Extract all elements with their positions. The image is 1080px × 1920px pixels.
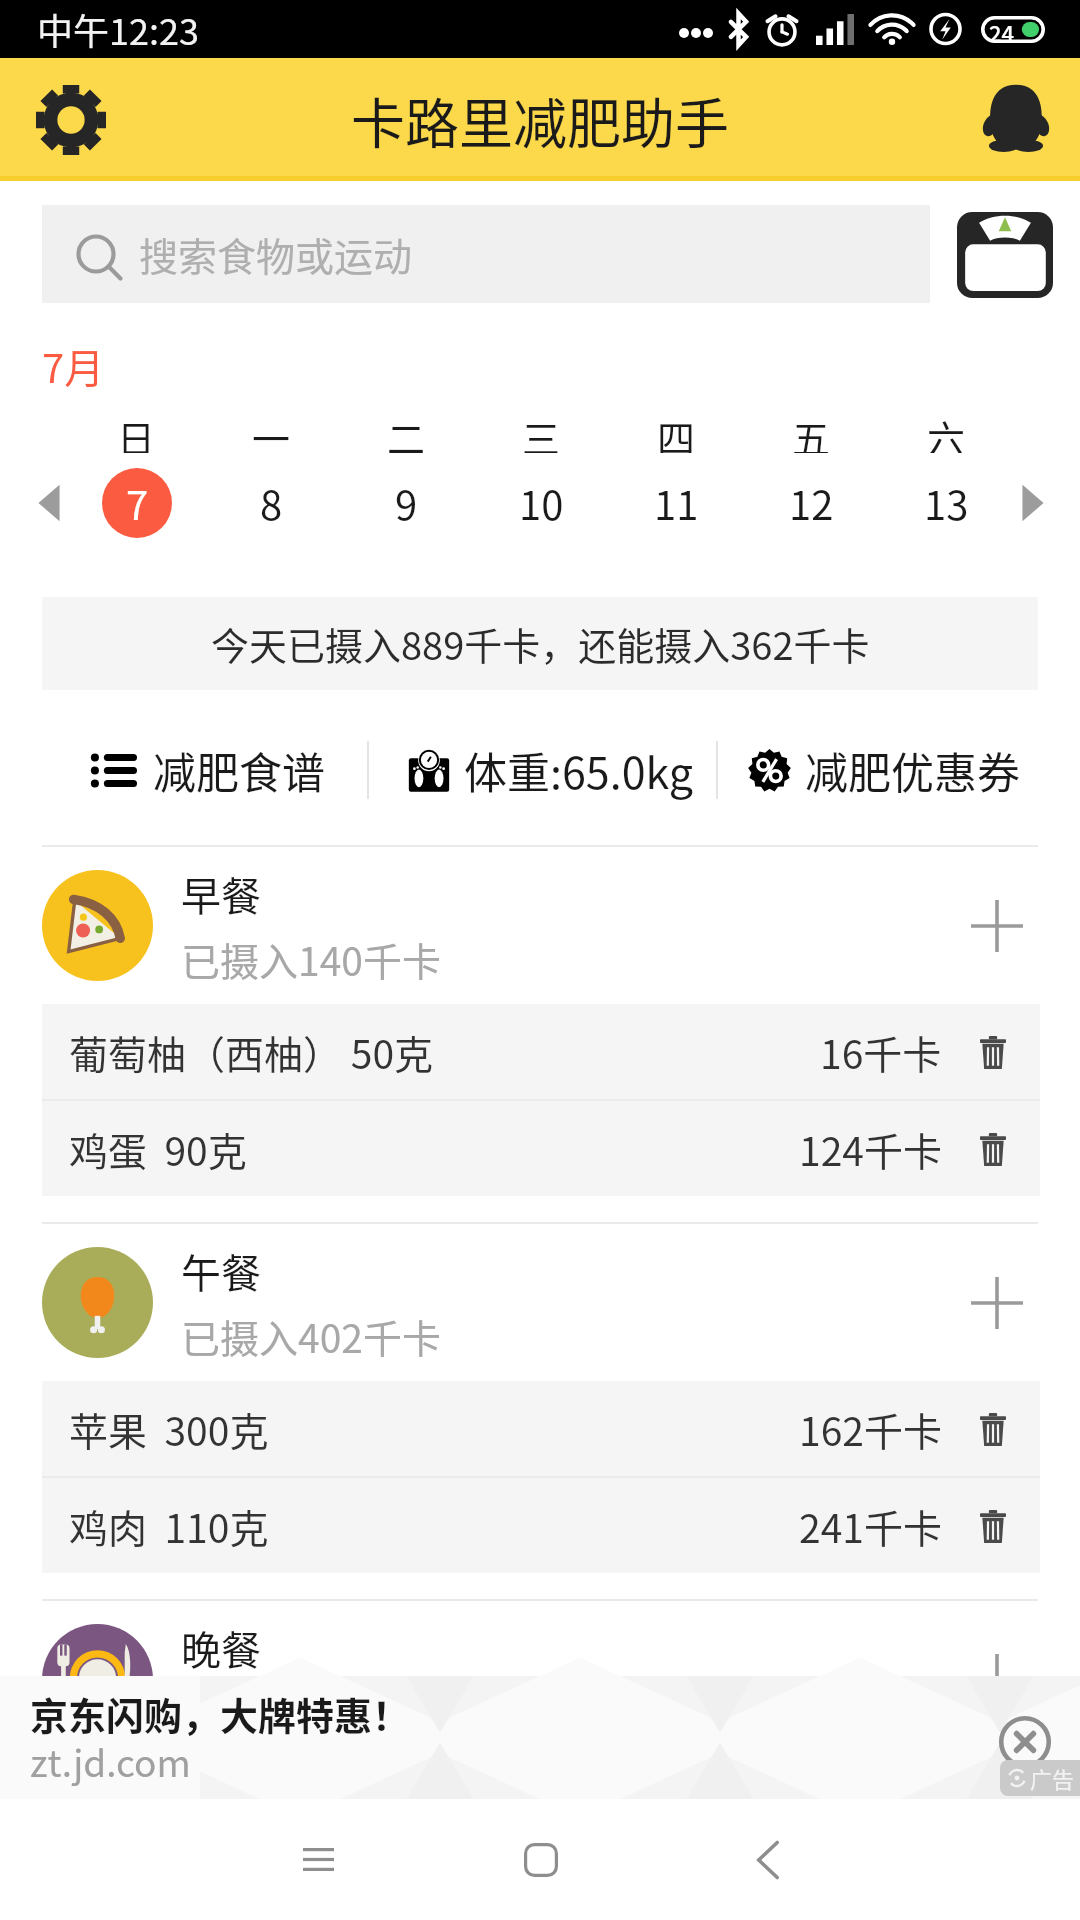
button[interactable]: 体重:65.0kg <box>369 695 716 845</box>
staticText: 二 <box>387 409 426 453</box>
staticText: 7 <box>126 474 149 532</box>
staticText: 三 <box>522 409 561 453</box>
staticText: 已摄入140千卡 <box>181 931 441 987</box>
staticText: 今天已摄入889千卡，还能摄入362千卡 <box>211 616 870 671</box>
button[interactable]: 删除 <box>964 1400 1022 1458</box>
staticText: 13 <box>924 474 969 532</box>
button[interactable]: 11 <box>609 460 744 546</box>
button[interactable]: 10 <box>474 460 609 546</box>
button[interactable]: 京东闪购，大牌特惠！ <box>0 1676 1080 1799</box>
button[interactable]: 苹果 300克 <box>42 1381 1040 1476</box>
button[interactable]: 返回 <box>657 1799 879 1920</box>
staticText: 124千卡 <box>799 1121 942 1177</box>
staticText: 减肥食谱 <box>153 739 325 801</box>
staticText: 已摄入402千卡 <box>181 1308 441 1364</box>
staticText: 卡路里减肥助手 <box>351 81 729 159</box>
button[interactable]: 晚餐 <box>0 1601 1080 1758</box>
staticText: 24 <box>989 16 1015 43</box>
staticText: 减肥优惠券 <box>805 739 1020 801</box>
button[interactable]: 主页 <box>430 1799 652 1920</box>
staticText: 广告 <box>1030 1762 1075 1794</box>
staticText: zt.jd.com <box>30 1734 191 1788</box>
button[interactable]: 7 <box>69 460 204 546</box>
staticText: 一 <box>252 409 291 453</box>
staticText: 8 <box>260 474 283 532</box>
staticText: 五 <box>792 409 831 453</box>
button[interactable]: 添加 <box>942 1248 1052 1358</box>
staticText: 晚餐 <box>181 1619 261 1677</box>
staticText: 京东闪购，大牌特惠！ <box>30 1686 411 1741</box>
button[interactable]: 添加 <box>942 1625 1052 1735</box>
button[interactable]: 下一周 <box>1022 460 1080 546</box>
staticText: 苹果 300克 <box>69 1401 269 1457</box>
staticText: 16千卡 <box>820 1024 942 1080</box>
button[interactable]: 9 <box>339 460 474 546</box>
staticText: 11 <box>654 474 699 532</box>
button[interactable]: 上一周 <box>38 460 69 546</box>
staticText: 12 <box>789 474 834 532</box>
staticText: 鸡肉 110克 <box>69 1498 269 1554</box>
button[interactable]: 鸡肉 110克 <box>42 1478 1040 1573</box>
staticText: 7月 <box>42 337 105 395</box>
staticText: 体重:65.0kg <box>464 739 694 801</box>
staticText: 六 <box>927 409 966 453</box>
button[interactable]: 13 <box>879 460 1014 546</box>
button[interactable]: 鸡蛋 90克 <box>42 1101 1040 1196</box>
staticText: 四 <box>657 409 696 453</box>
button[interactable]: 12 <box>744 460 879 546</box>
staticText: 早餐 <box>181 865 261 923</box>
staticText: 午餐 <box>181 1242 261 1300</box>
button[interactable]: 设置 <box>22 71 120 169</box>
button[interactable]: 添加 <box>942 871 1052 981</box>
button[interactable]: 午餐 <box>0 1224 1080 1381</box>
button[interactable]: 删除 <box>964 1497 1022 1555</box>
staticText: 10 <box>519 474 564 532</box>
staticText: 中午12:23 <box>37 3 199 55</box>
button[interactable]: 减肥食谱 <box>0 695 368 845</box>
staticText: 搜索食物或运动 <box>139 226 413 282</box>
button[interactable]: 关闭广告 <box>994 1711 1056 1773</box>
staticText: 葡萄柚（西柚） 50克 <box>69 1024 434 1080</box>
button[interactable]: 体重秤 <box>957 212 1053 298</box>
staticText: 9 <box>395 474 418 532</box>
button[interactable]: 减肥优惠券 <box>718 695 1080 845</box>
button[interactable]: 搜索食物或运动 <box>42 205 930 303</box>
staticText: 162千卡 <box>799 1401 942 1457</box>
staticText: 241千卡 <box>799 1498 942 1554</box>
button[interactable]: 删除 <box>964 1120 1022 1178</box>
button[interactable]: 最近任务 <box>207 1799 429 1920</box>
button[interactable]: 早餐 <box>0 847 1080 1004</box>
button[interactable]: 8 <box>204 460 339 546</box>
staticText: 鸡蛋 90克 <box>69 1121 247 1177</box>
button[interactable]: 删除 <box>964 1023 1022 1081</box>
button[interactable]: 葡萄柚（西柚） 50克 <box>42 1004 1040 1099</box>
staticText: 已摄入347千卡 <box>181 1685 441 1741</box>
button[interactable]: QQ <box>964 68 1068 172</box>
staticText: 日 <box>117 409 156 453</box>
